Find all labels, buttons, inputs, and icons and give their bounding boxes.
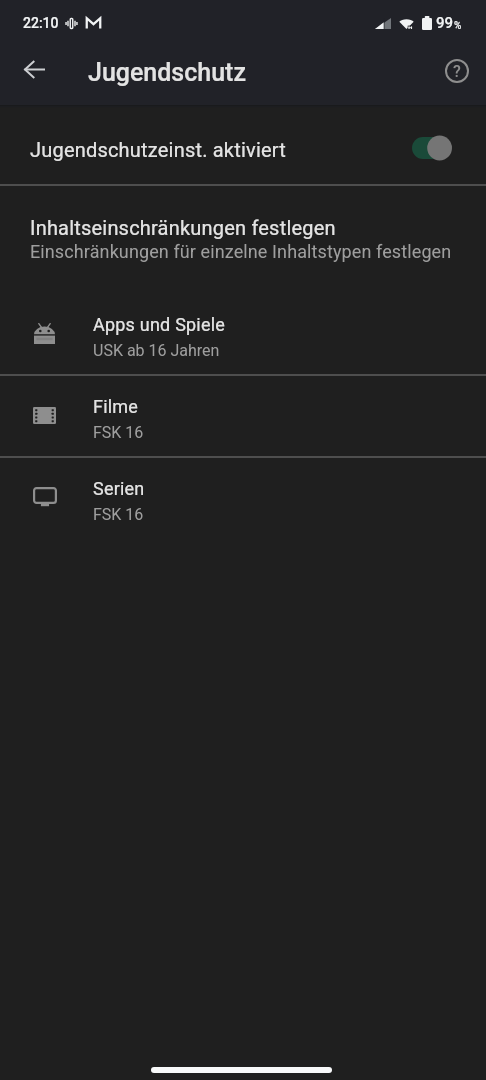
staticText: Filme [93, 396, 139, 417]
staticText: Einschränkungen für einzelne Inhaltstype… [30, 241, 452, 262]
staticText: 99 [436, 14, 454, 32]
staticText: Inhaltseinschränkungen festlegen [30, 216, 336, 239]
staticText: Jugendschutzeinst. aktiviert [30, 138, 412, 161]
button[interactable]: Zurück [10, 45, 58, 93]
staticText: FSK 16 [93, 505, 144, 524]
button[interactable]: Jugendschutzeinstellungen aktiviert [412, 135, 452, 161]
button[interactable]: Jugendschutzeinst. aktiviert [0, 108, 486, 184]
staticText: Serien [93, 478, 145, 499]
staticText: % [454, 20, 462, 32]
button[interactable]: Apps und Spiele [0, 294, 486, 374]
staticText: FSK 16 [93, 423, 144, 442]
button[interactable]: Filme [0, 376, 486, 456]
button[interactable]: Hilfe [433, 47, 481, 95]
button[interactable]: Serien [0, 458, 486, 538]
staticText: Apps und Spiele [93, 314, 226, 335]
staticText: ? [453, 62, 461, 81]
staticText: 22:10 [23, 15, 59, 31]
staticText: USK ab 16 Jahren [93, 341, 220, 360]
staticText: Jugendschutz [88, 58, 246, 87]
